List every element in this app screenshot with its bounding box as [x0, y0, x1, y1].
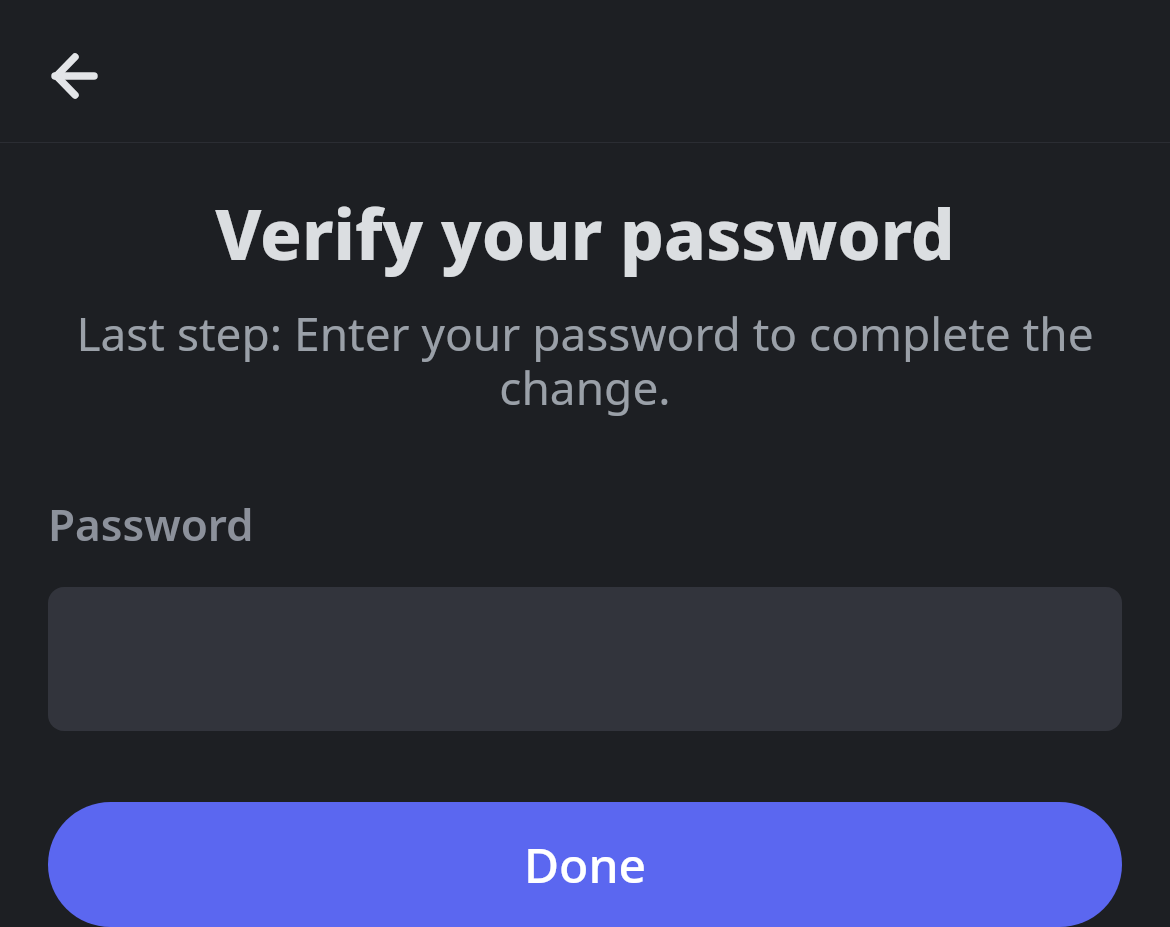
- button[interactable]: Done: [48, 802, 1122, 927]
- staticText: Verify your password: [24, 186, 1146, 280]
- staticText: Password: [48, 494, 254, 554]
- button[interactable]: Back: [36, 37, 112, 113]
- staticText: Done: [524, 832, 647, 897]
- staticText: Last step: Enter your password to comple…: [30, 302, 1140, 419]
